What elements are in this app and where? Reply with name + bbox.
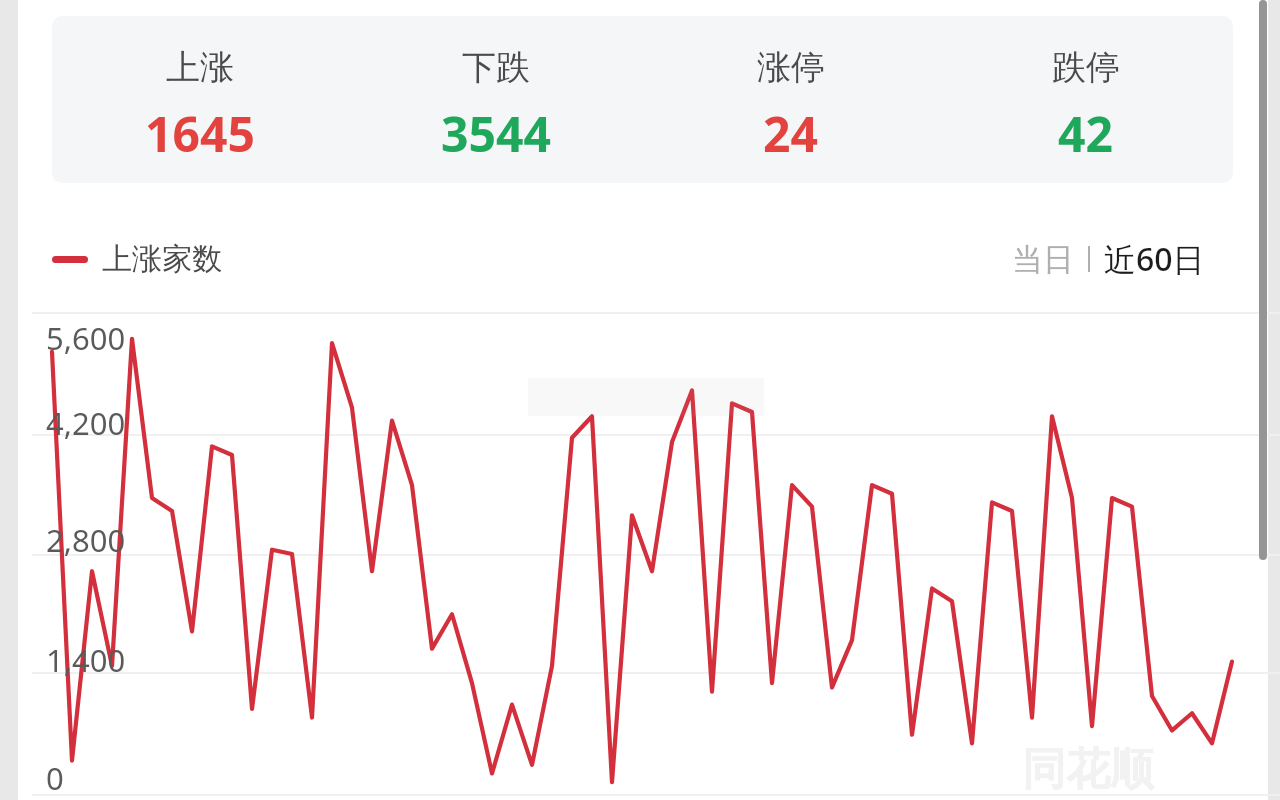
staticText: 0 bbox=[46, 757, 64, 799]
button[interactable]: 近60日 bbox=[1100, 233, 1209, 285]
button[interactable]: 当日 bbox=[1008, 236, 1078, 283]
staticText: 3544 bbox=[441, 101, 551, 166]
staticText: 同花顺 bbox=[1022, 742, 1154, 797]
staticText: 跌停 bbox=[1052, 46, 1120, 89]
button[interactable]: 跌停 bbox=[938, 16, 1233, 183]
button[interactable]: 下跌 bbox=[348, 16, 643, 183]
staticText: 1,400 bbox=[46, 639, 126, 681]
button[interactable]: 涨停 bbox=[643, 16, 938, 183]
staticText: 上涨 bbox=[166, 46, 234, 89]
staticText: 涨停 bbox=[757, 46, 825, 89]
staticText: 4,200 bbox=[46, 402, 126, 444]
staticText: 24 bbox=[763, 101, 818, 166]
staticText: 2,800 bbox=[46, 519, 126, 561]
staticText: 下跌 bbox=[462, 46, 530, 89]
staticText: 5,600 bbox=[46, 317, 126, 359]
staticText: 近60日 bbox=[1104, 237, 1205, 281]
button[interactable]: 上涨 bbox=[52, 16, 348, 183]
staticText: 42 bbox=[1058, 101, 1113, 166]
staticText: 当日 bbox=[1012, 240, 1074, 279]
button[interactable]: 上涨 bbox=[52, 16, 1233, 183]
staticText: 1645 bbox=[145, 101, 255, 166]
staticText: 上涨家数 bbox=[102, 240, 222, 278]
